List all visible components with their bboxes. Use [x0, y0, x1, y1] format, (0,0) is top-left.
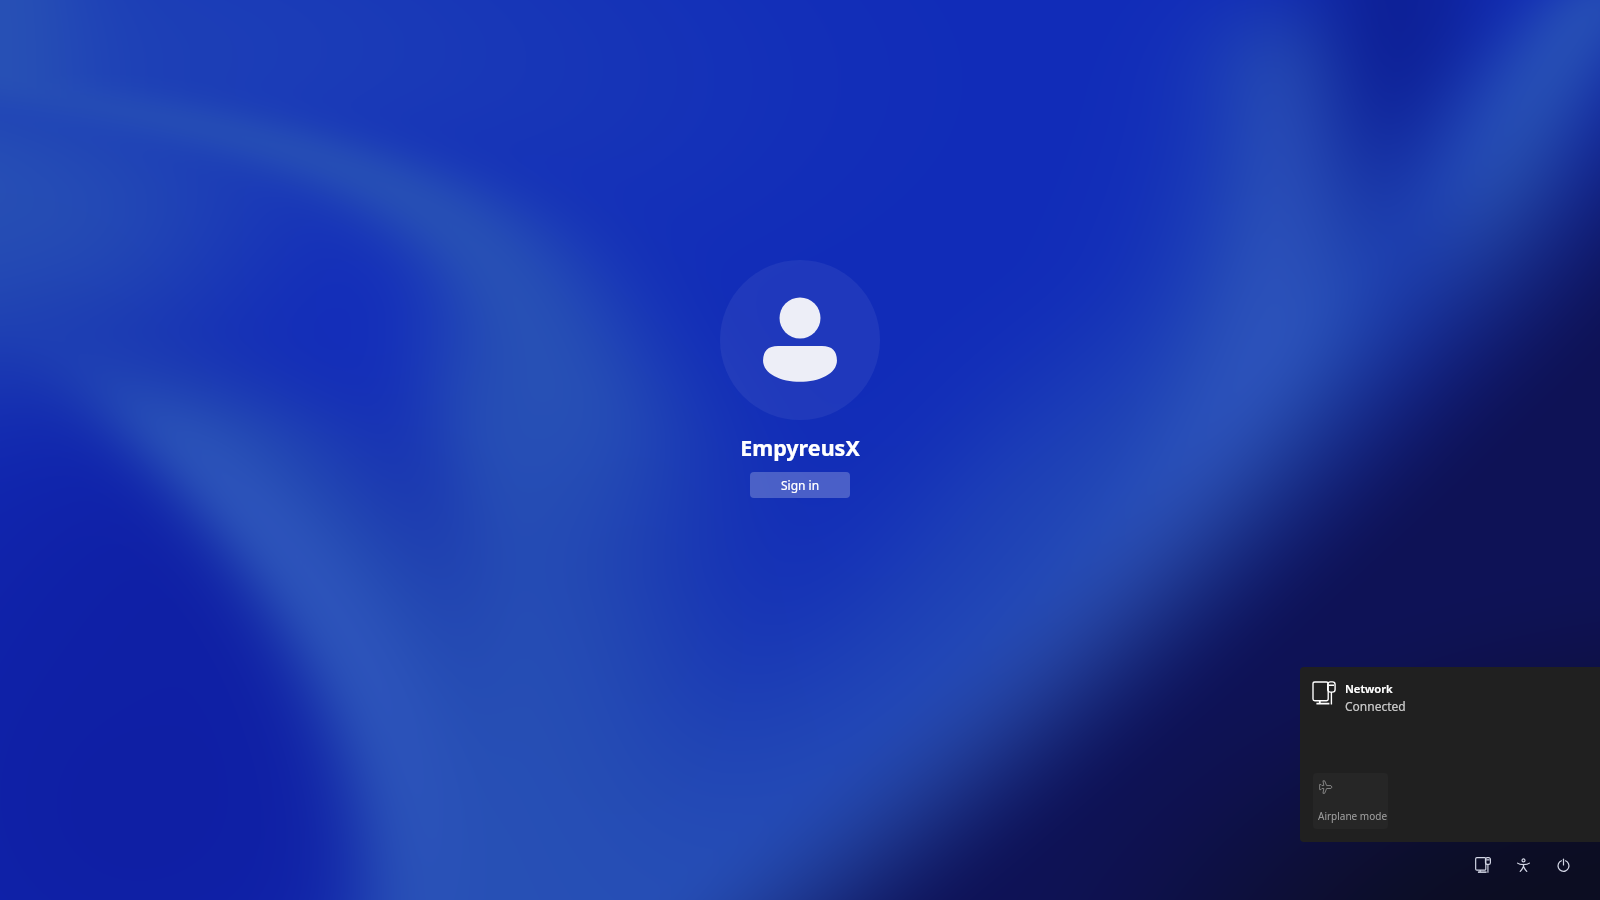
- button[interactable]: Sign in: [750, 472, 850, 498]
- staticText: Sign in: [781, 477, 820, 493]
- button[interactable]: Airplane mode: [1313, 773, 1388, 829]
- staticText: EmpyreusX: [740, 433, 860, 462]
- button[interactable]: Power: [1543, 845, 1583, 885]
- button[interactable]: Network: [1463, 845, 1503, 885]
- staticText: Airplane mode: [1318, 809, 1388, 823]
- button[interactable]: Accessibility: [1503, 845, 1543, 885]
- button[interactable]: User avatar: [720, 260, 880, 420]
- staticText: Connected: [1345, 698, 1406, 714]
- staticText: Network: [1345, 681, 1393, 696]
